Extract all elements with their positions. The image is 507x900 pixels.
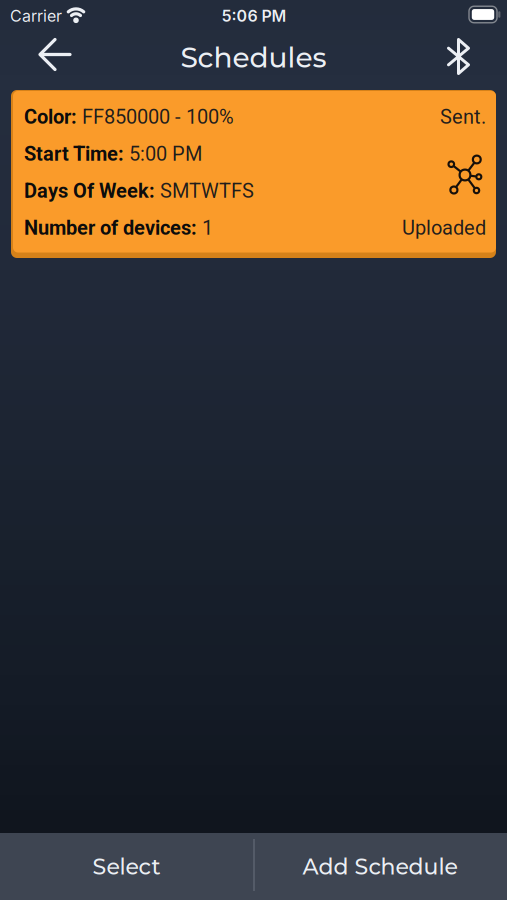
staticText: Uploaded xyxy=(402,216,486,240)
staticText: Carrier xyxy=(10,6,62,26)
staticText: 1 xyxy=(197,216,213,240)
staticText: Schedules xyxy=(180,40,326,74)
staticText: 5:06 PM xyxy=(221,6,286,26)
button[interactable]: Back xyxy=(38,37,72,71)
staticText: Sent. xyxy=(440,105,486,129)
staticText: SMTWTFS xyxy=(155,179,254,203)
staticText: Days Of Week: xyxy=(24,179,155,203)
staticText: Number of devices: xyxy=(24,216,197,240)
staticText: 5:00 PM xyxy=(124,142,202,166)
button[interactable]: Add Schedule xyxy=(253,833,507,900)
staticText: Start Time: xyxy=(24,142,124,166)
button[interactable]: Bluetooth xyxy=(447,38,471,74)
button[interactable]: Color: xyxy=(11,90,496,258)
staticText: Color: xyxy=(24,105,77,129)
staticText: FF850000 - 100% xyxy=(77,105,234,129)
staticText: Add Schedule xyxy=(302,853,457,880)
button[interactable]: Select xyxy=(0,833,253,900)
staticText: Select xyxy=(92,853,160,880)
